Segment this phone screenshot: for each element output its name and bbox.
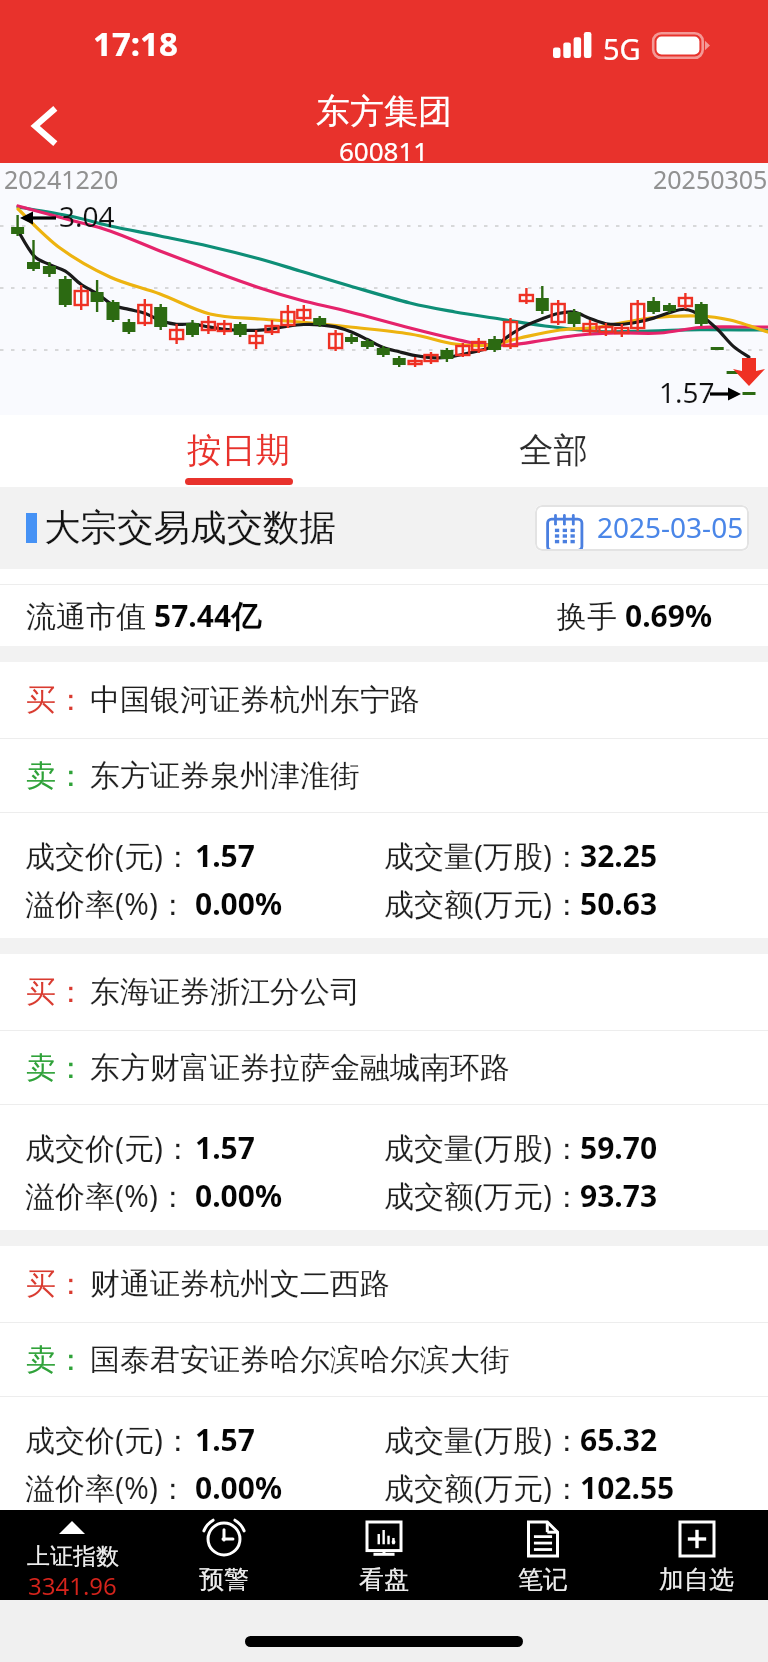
staticText: 0.00%: [195, 883, 282, 924]
staticText: 东方集团: [316, 90, 452, 133]
staticText: 流通市值: [26, 595, 154, 636]
staticText: 32.25: [580, 835, 658, 876]
staticText: 成交量(万股)：: [384, 835, 582, 876]
staticText: 东海证券浙江分公司: [90, 973, 360, 1011]
button[interactable]: 买：: [0, 1246, 768, 1322]
staticText: 17:18: [93, 21, 178, 66]
other: Add to watchlist: [680, 1522, 714, 1556]
staticText: 1.57: [195, 1419, 255, 1460]
staticText: 买：: [26, 1265, 86, 1303]
staticText: 东方财富证券拉萨金融城南环路: [90, 1049, 510, 1087]
staticText: 大宗交易成交数据: [44, 505, 336, 551]
staticText: 0.69%: [625, 595, 712, 636]
staticText: 全部: [519, 429, 588, 472]
staticText: 1.57: [195, 1127, 255, 1168]
button[interactable]: 2025-03-05: [535, 505, 749, 551]
staticText: 溢价率(%)：: [25, 1175, 188, 1216]
staticText: 加自选: [659, 1564, 734, 1595]
staticText: 2025-03-05: [597, 508, 744, 546]
staticText: 按日期: [187, 429, 291, 472]
staticText: 预警: [199, 1564, 249, 1595]
button[interactable]: Back: [5, 87, 83, 165]
staticText: 溢价率(%)：: [25, 883, 188, 924]
staticText: 93.73: [580, 1175, 658, 1216]
button[interactable]: 卖：: [0, 1031, 768, 1104]
staticText: 成交价(元)：: [25, 835, 193, 876]
staticText: 中国银河证券杭州东宁路: [90, 681, 420, 719]
other: Alerts: [207, 1522, 241, 1556]
button[interactable]: 按日期: [160, 415, 318, 487]
staticText: 59.70: [580, 1127, 658, 1168]
staticText: 20250305: [653, 162, 768, 196]
staticText: 成交价(元)：: [25, 1127, 193, 1168]
button[interactable]: 卖：: [0, 739, 768, 812]
button[interactable]: 买：: [0, 662, 768, 738]
staticText: 1.57: [659, 373, 715, 411]
staticText: 3341.96: [28, 1569, 117, 1602]
staticText: 1.57: [195, 835, 255, 876]
button[interactable]: 全部: [474, 415, 632, 487]
staticText: 57.44亿: [154, 595, 262, 636]
staticText: 3.04: [59, 197, 115, 235]
staticText: 看盘: [359, 1564, 409, 1595]
staticText: 成交量(万股)：: [384, 1127, 582, 1168]
staticText: 买：: [26, 681, 86, 719]
staticText: 溢价率(%)：: [25, 1467, 188, 1508]
staticText: 买：: [26, 973, 86, 1011]
staticText: 国泰君安证券哈尔滨哈尔滨大街: [90, 1341, 510, 1379]
staticText: 换手: [557, 595, 625, 636]
staticText: 成交额(万元)：: [384, 1467, 582, 1508]
staticText: 0.00%: [195, 1175, 282, 1216]
staticText: 卖：: [26, 757, 86, 795]
staticText: 65.32: [580, 1419, 658, 1460]
button[interactable]: Market: [309, 1510, 459, 1600]
button[interactable]: Notes: [468, 1510, 618, 1600]
button[interactable]: Alerts: [149, 1510, 299, 1600]
staticText: 卖：: [26, 1341, 86, 1379]
staticText: 笔记: [518, 1564, 568, 1595]
staticText: 102.55: [580, 1467, 675, 1508]
staticText: 5G: [603, 29, 641, 68]
other: Market: [367, 1522, 401, 1556]
staticText: 50.63: [580, 883, 658, 924]
staticText: 600811: [339, 133, 429, 168]
staticText: 成交额(万元)：: [384, 883, 582, 924]
button[interactable]: 上证指数: [0, 1510, 145, 1600]
staticText: 成交价(元)：: [25, 1419, 193, 1460]
staticText: 卖：: [26, 1049, 86, 1087]
staticText: 上证指数: [27, 1542, 119, 1571]
button[interactable]: 卖：: [0, 1323, 768, 1396]
staticText: 20241220: [4, 162, 119, 196]
staticText: 成交量(万股)：: [384, 1419, 582, 1460]
staticText: 财通证券杭州文二西路: [90, 1265, 390, 1303]
button[interactable]: Add to watchlist: [621, 1510, 768, 1600]
staticText: 东方证券泉州津淮街: [90, 757, 360, 795]
button[interactable]: 买：: [0, 954, 768, 1030]
staticText: 0.00%: [195, 1467, 282, 1508]
staticText: 成交额(万元)：: [384, 1175, 582, 1216]
other: Notes: [526, 1522, 560, 1556]
